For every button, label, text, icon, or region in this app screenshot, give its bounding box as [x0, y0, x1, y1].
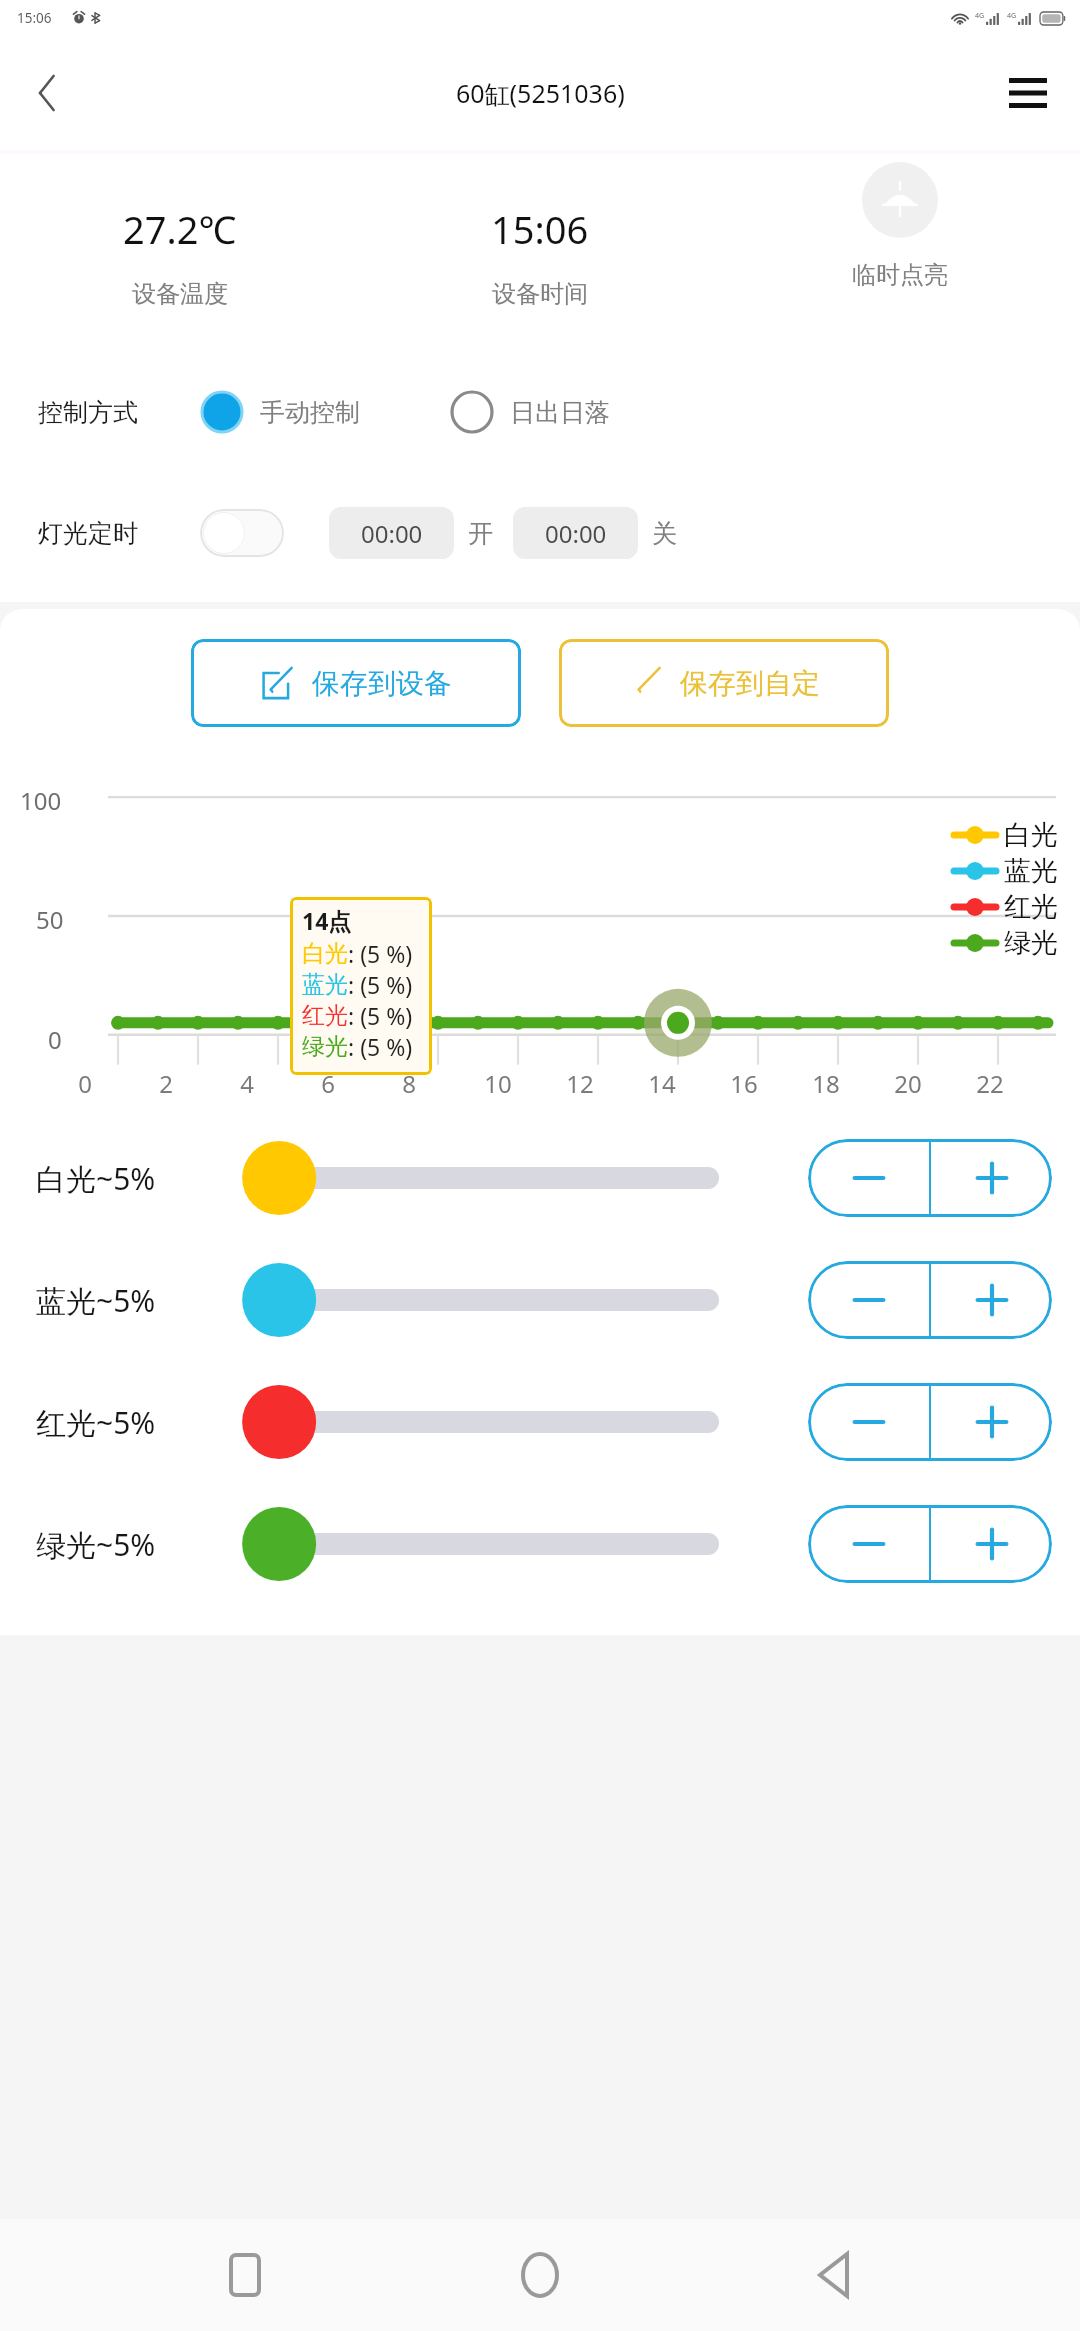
- staticText: 日出日落: [510, 397, 610, 428]
- button[interactable]: 手动控制: [200, 384, 360, 440]
- staticText: : (5 %): [348, 1000, 413, 1031]
- staticText: : (5 %): [348, 1031, 413, 1062]
- staticText: 18: [812, 1067, 840, 1100]
- staticText: 4G: [1007, 11, 1017, 21]
- button[interactable]: Increase: [931, 1261, 1052, 1339]
- button[interactable]: Decrease: [808, 1383, 929, 1461]
- button[interactable]: 00:00: [329, 507, 454, 559]
- staticText: 50: [36, 903, 64, 936]
- staticText: 10: [484, 1067, 512, 1100]
- staticText: 红光: [1004, 890, 1058, 924]
- button[interactable]: Back: [18, 63, 78, 123]
- staticText: 12: [566, 1067, 594, 1100]
- staticText: 100: [20, 784, 62, 817]
- button[interactable]: Menu: [996, 61, 1060, 125]
- staticText: 20: [894, 1067, 922, 1100]
- staticText: 2: [159, 1067, 173, 1100]
- button[interactable]: Home: [490, 2225, 590, 2325]
- staticText: 灯光定时: [38, 518, 138, 549]
- staticText: 关: [652, 518, 677, 549]
- staticText: 00:00: [361, 517, 423, 550]
- staticText: 4: [240, 1067, 254, 1100]
- staticText: 15:06: [17, 9, 52, 27]
- staticText: 白光: [1004, 818, 1058, 852]
- staticText: 27.2℃: [123, 203, 237, 255]
- button[interactable]: [250, 1138, 780, 1218]
- button[interactable]: Timer toggle: [200, 509, 284, 557]
- staticText: 保存到自定: [680, 666, 820, 701]
- staticText: 60缸(5251036): [456, 76, 625, 110]
- staticText: 红光~5%: [36, 1402, 236, 1443]
- button[interactable]: [250, 1382, 780, 1462]
- button[interactable]: 00:00: [513, 507, 638, 559]
- staticText: 8: [402, 1067, 416, 1100]
- button[interactable]: Back: [785, 2225, 885, 2325]
- staticText: 00:00: [545, 517, 607, 550]
- button[interactable]: 保存到自定: [559, 639, 889, 727]
- staticText: 绿光~5%: [36, 1524, 236, 1565]
- staticText: 手动控制: [260, 397, 360, 428]
- staticText: 16: [730, 1067, 758, 1100]
- button[interactable]: Increase: [931, 1383, 1052, 1461]
- button[interactable]: Decrease: [808, 1261, 929, 1339]
- staticText: 15:06: [491, 203, 589, 255]
- button[interactable]: [250, 1260, 780, 1340]
- staticText: 红光: [302, 1001, 348, 1030]
- button[interactable]: Increase: [931, 1139, 1052, 1217]
- staticText: 蓝光: [302, 970, 348, 999]
- staticText: 绿光: [1004, 926, 1058, 960]
- staticText: 14: [648, 1067, 676, 1100]
- button[interactable]: Decrease: [808, 1139, 929, 1217]
- button[interactable]: 临时点亮: [846, 156, 954, 296]
- staticText: 临时点亮: [852, 260, 948, 290]
- staticText: : (5 %): [348, 938, 413, 969]
- button[interactable]: 保存到设备: [191, 639, 521, 727]
- button[interactable]: Recents: [195, 2225, 295, 2325]
- staticText: 14点: [302, 905, 352, 936]
- staticText: 绿光: [302, 1032, 348, 1061]
- button[interactable]: 日出日落: [450, 384, 610, 440]
- staticText: 设备时间: [492, 279, 588, 309]
- staticText: 0: [78, 1067, 92, 1100]
- staticText: 白光~5%: [36, 1158, 236, 1199]
- staticText: 开: [468, 518, 493, 549]
- staticText: 设备温度: [132, 279, 228, 309]
- button[interactable]: Decrease: [808, 1505, 929, 1583]
- button[interactable]: Increase: [931, 1505, 1052, 1583]
- staticText: 蓝光~5%: [36, 1280, 236, 1321]
- staticText: 0: [48, 1023, 62, 1056]
- staticText: : (5 %): [348, 969, 413, 1000]
- staticText: 6: [321, 1067, 335, 1100]
- button[interactable]: [250, 1504, 780, 1584]
- staticText: 蓝光: [1004, 854, 1058, 888]
- staticText: 保存到设备: [312, 666, 452, 701]
- staticText: 控制方式: [38, 397, 138, 428]
- staticText: 4G: [975, 11, 985, 21]
- staticText: 22: [976, 1067, 1004, 1100]
- staticText: 白光: [302, 939, 348, 968]
